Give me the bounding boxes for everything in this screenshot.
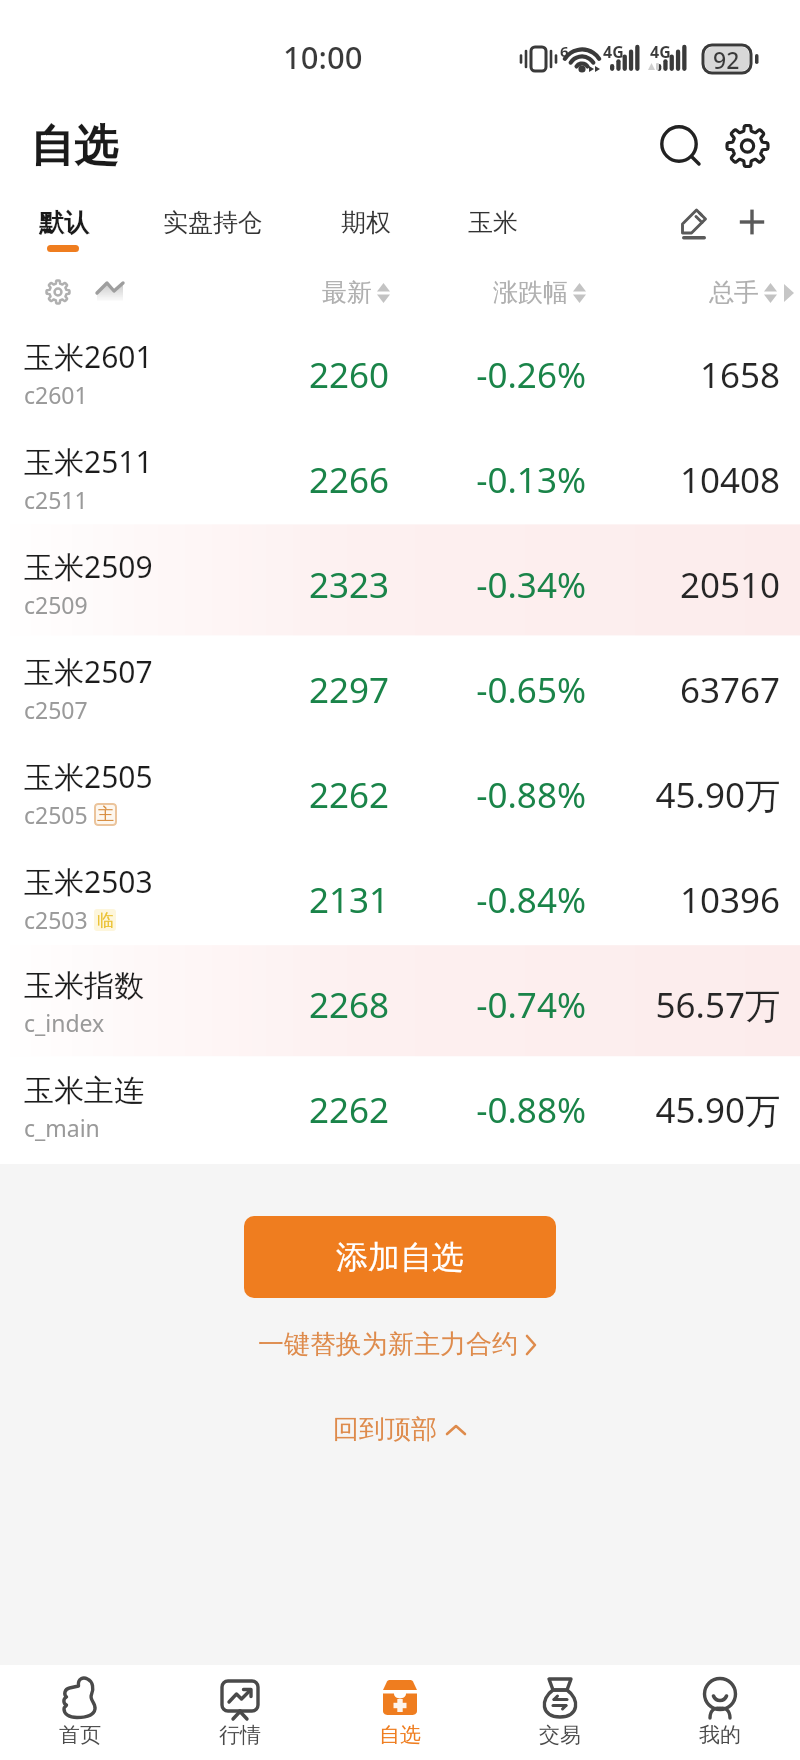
button[interactable]: 玉米 [468, 207, 518, 238]
staticText: 期权 [341, 207, 391, 238]
staticText: 行情 [219, 1722, 261, 1748]
staticText: c_main [24, 1112, 100, 1143]
staticText: c2507 [24, 694, 88, 725]
staticText: -0.34% [356, 561, 586, 609]
staticText: 玉米 [468, 207, 518, 238]
staticText: 玉米主连 [24, 1072, 144, 1110]
staticText: 回到顶部 [333, 1413, 437, 1446]
staticText: 10396 [550, 876, 780, 924]
staticText: 首页 [59, 1722, 101, 1748]
staticText: 45.90万 [550, 1086, 780, 1134]
button[interactable]: 玉米2505 [0, 742, 800, 847]
staticText: 临 [97, 910, 114, 931]
staticText: 玉米2509 [24, 546, 153, 587]
button[interactable]: 我的 [640, 1665, 800, 1760]
button[interactable]: 添加自选 [244, 1216, 556, 1298]
button[interactable]: 默认 [39, 207, 89, 238]
staticText: 2266 [159, 456, 389, 504]
staticText: c2511 [24, 484, 88, 515]
button[interactable]: 一键替换为新主力合约 [246, 1322, 554, 1367]
staticText: 6 [560, 41, 569, 61]
staticText: 我的 [699, 1722, 741, 1748]
staticText: 56.57万 [550, 981, 780, 1029]
staticText: -0.65% [356, 666, 586, 714]
staticText: -0.88% [356, 1086, 586, 1134]
staticText: 总手 [709, 277, 759, 308]
button[interactable]: 总手 [596, 277, 796, 308]
button[interactable]: 交易 [480, 1665, 640, 1760]
staticText: c2503 [24, 904, 88, 935]
staticText: 添加自选 [336, 1237, 464, 1277]
button[interactable]: 自选 [320, 1665, 480, 1760]
staticText: 45.90万 [550, 771, 780, 819]
button[interactable]: 玉米2601 [0, 322, 800, 427]
button[interactable]: 首页 [0, 1665, 160, 1760]
staticText: 2262 [159, 771, 389, 819]
button[interactable]: Add [726, 196, 778, 248]
button[interactable]: 玉米2503 [0, 847, 800, 952]
staticText: 玉米2503 [24, 861, 153, 902]
staticText: c2509 [24, 589, 88, 620]
staticText: 一键替换为新主力合约 [258, 1328, 518, 1361]
staticText: 涨跌幅 [493, 277, 568, 308]
staticText: 92 [713, 44, 740, 75]
button[interactable]: 玉米2509 [0, 532, 800, 637]
staticText: 玉米2511 [24, 441, 153, 482]
staticText: 2268 [159, 981, 389, 1029]
button[interactable]: 最新 [190, 277, 390, 308]
button[interactable]: 玉米主连 [0, 1057, 800, 1162]
staticText: 交易 [539, 1722, 581, 1748]
staticText: 玉米2505 [24, 756, 153, 797]
button[interactable]: Settings [718, 118, 774, 174]
staticText: 最新 [322, 277, 372, 308]
button[interactable]: Search [656, 118, 712, 174]
staticText: c_index [24, 1007, 105, 1038]
staticText: 10:00 [283, 36, 363, 78]
staticText: -0.74% [356, 981, 586, 1029]
staticText: 2262 [159, 1086, 389, 1134]
button[interactable]: 实盘持仓 [163, 207, 263, 238]
staticText: 主 [97, 804, 114, 825]
button[interactable]: Chart view [88, 270, 132, 314]
staticText: -0.88% [356, 771, 586, 819]
staticText: c2601 [24, 379, 88, 410]
staticText: 玉米2507 [24, 651, 153, 692]
staticText: 2131 [159, 876, 389, 924]
button[interactable]: 期权 [341, 207, 391, 238]
staticText: 玉米2601 [24, 336, 153, 377]
staticText: -0.13% [356, 456, 586, 504]
staticText: 4G [603, 41, 624, 63]
staticText: 20510 [550, 561, 780, 609]
staticText: 4G [650, 41, 671, 63]
staticText: 默认 [39, 207, 89, 238]
button[interactable]: Edit [668, 196, 720, 248]
button[interactable]: 回到顶部 [321, 1407, 479, 1452]
button[interactable]: 玉米2511 [0, 427, 800, 532]
staticText: 自选 [379, 1722, 421, 1748]
staticText: 63767 [550, 666, 780, 714]
staticText: 实盘持仓 [163, 207, 263, 238]
staticText: -0.26% [356, 351, 586, 399]
staticText: 2323 [159, 561, 389, 609]
staticText: 2297 [159, 666, 389, 714]
button[interactable]: 行情 [160, 1665, 320, 1760]
button[interactable]: 玉米指数 [0, 952, 800, 1057]
staticText: 1658 [550, 351, 780, 399]
staticText: 2260 [159, 351, 389, 399]
staticText: 自选 [30, 119, 118, 174]
button[interactable]: Column settings [38, 272, 78, 312]
staticText: 玉米指数 [24, 967, 144, 1005]
staticText: c2505 [24, 799, 88, 830]
staticText: 10408 [550, 456, 780, 504]
staticText: -0.84% [356, 876, 586, 924]
button[interactable]: 玉米2507 [0, 637, 800, 742]
button[interactable]: 涨跌幅 [386, 277, 586, 308]
